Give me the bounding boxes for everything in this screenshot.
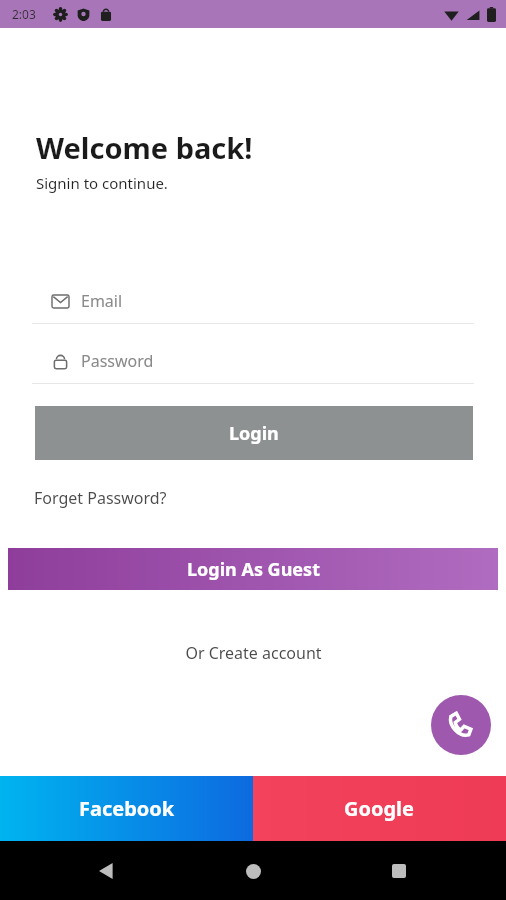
button[interactable]: Google — [253, 776, 506, 841]
button[interactable]: Back — [90, 854, 124, 888]
staticText: Password — [81, 350, 154, 372]
staticText: Signin to continue. — [36, 173, 168, 193]
button[interactable]: Password — [32, 338, 474, 384]
button[interactable]: Home — [236, 854, 270, 888]
button[interactable]: Call — [431, 695, 491, 755]
button[interactable]: Login — [35, 406, 473, 460]
staticText: Email — [81, 290, 123, 312]
button[interactable]: Login As Guest — [8, 548, 498, 590]
staticText: Forget Password? — [34, 487, 167, 509]
staticText: 2:03 — [12, 6, 36, 22]
button[interactable]: Facebook — [0, 776, 253, 841]
staticText: Login — [229, 421, 279, 446]
staticText: Login As Guest — [187, 557, 320, 582]
button[interactable]: Recent apps — [382, 854, 416, 888]
button[interactable]: Forget Password? — [28, 483, 173, 513]
staticText: Welcome back! — [36, 128, 253, 167]
button[interactable]: Email — [32, 278, 474, 324]
staticText: Or Create account — [185, 642, 322, 664]
staticText: Facebook — [79, 795, 175, 822]
button[interactable]: Or Create account — [0, 637, 506, 669]
staticText: Google — [344, 795, 415, 822]
